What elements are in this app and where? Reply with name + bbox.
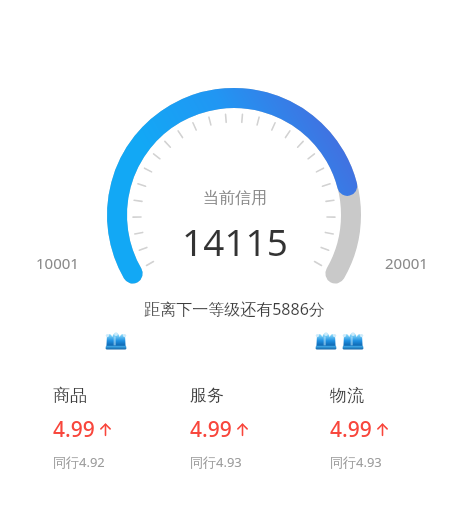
staticText: 4.99 — [190, 415, 232, 444]
other: 上升 — [100, 423, 111, 436]
staticText: 同行4.93 — [330, 453, 382, 471]
staticText: 服务 — [190, 385, 224, 406]
other: 上升 — [377, 423, 388, 436]
staticText: 距离下一等级还有5886分 — [144, 298, 325, 320]
staticText: 4.99 — [330, 415, 372, 444]
other: 上升 — [237, 423, 248, 436]
staticText: 物流 — [330, 385, 364, 406]
button[interactable]: 服务 — [190, 385, 300, 471]
staticText: 当前信用 — [203, 188, 267, 208]
staticText: 4.99 — [53, 415, 95, 444]
button[interactable]: 当前等级皇冠 — [104, 329, 128, 351]
button[interactable]: 商品 — [53, 385, 163, 471]
staticText: 同行4.93 — [190, 453, 242, 471]
button[interactable]: 物流 — [330, 385, 440, 471]
staticText: 同行4.92 — [53, 453, 105, 471]
staticText: 10001 — [36, 253, 79, 273]
staticText: 商品 — [53, 385, 87, 406]
button[interactable]: 下一等级皇冠 — [314, 329, 338, 351]
staticText: 14115 — [182, 216, 288, 266]
staticText: 20001 — [385, 253, 428, 273]
button[interactable]: 下一等级皇冠 — [341, 329, 365, 351]
